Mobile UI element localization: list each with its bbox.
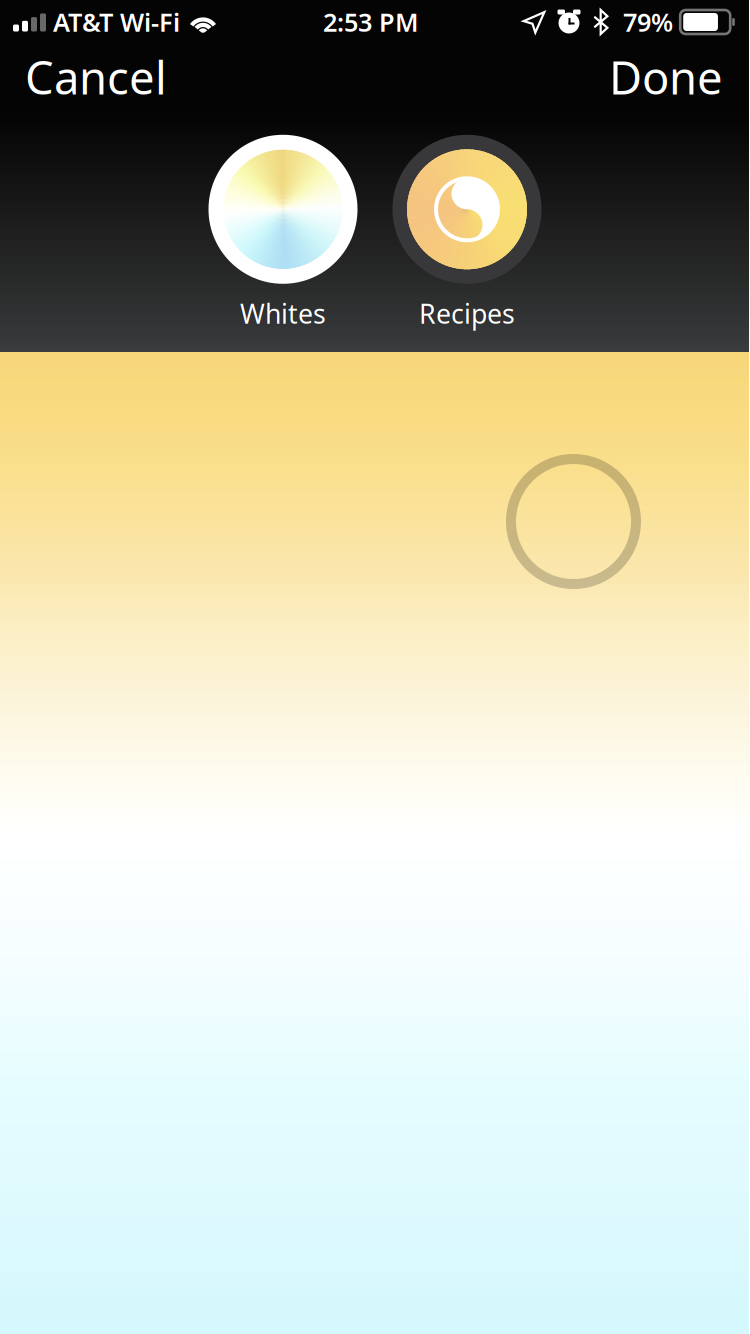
staticText: AT&T Wi-Fi	[46, 5, 187, 39]
button[interactable]: Recipes	[392, 135, 541, 331]
button[interactable]: Colour picker handle	[501, 449, 646, 594]
staticText: 2:53 PM	[323, 5, 419, 39]
button[interactable]: Done	[583, 44, 749, 110]
staticText: Done	[609, 47, 723, 107]
button[interactable]: Cancel	[0, 44, 193, 110]
staticText: Recipes	[419, 296, 515, 331]
button[interactable]: Whites	[208, 135, 357, 331]
staticText: Whites	[240, 296, 326, 331]
staticText: Cancel	[25, 47, 167, 107]
staticText: 79%	[609, 5, 680, 39]
